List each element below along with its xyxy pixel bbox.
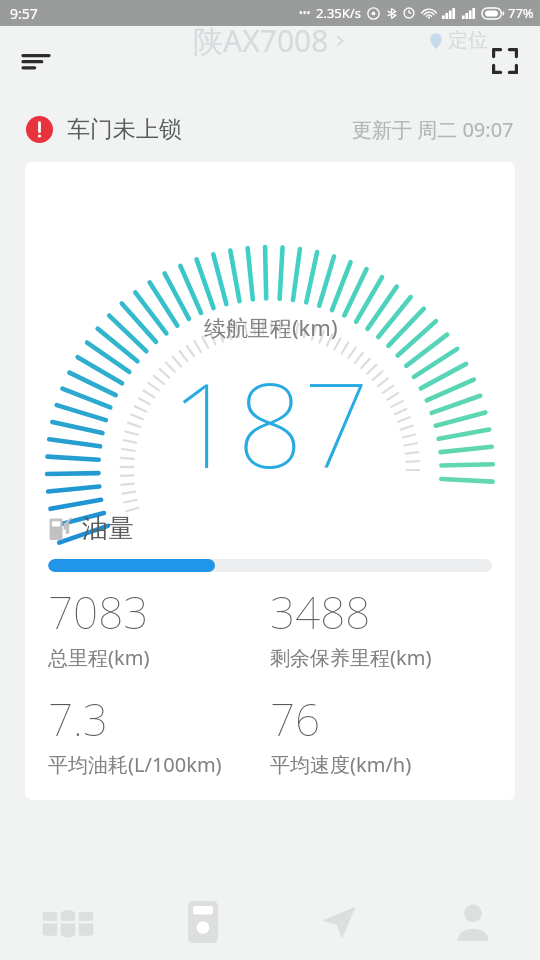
- button[interactable]: Menu: [14, 39, 58, 83]
- staticText: 平均油耗(L/100km): [48, 751, 222, 778]
- staticText: 2.35K/s: [316, 4, 361, 22]
- staticText: 剩余保养里程(km): [270, 644, 432, 671]
- staticText: •••: [299, 6, 311, 20]
- button[interactable]: 3488: [270, 582, 492, 671]
- staticText: 187: [171, 344, 370, 502]
- button[interactable]: Scan: [482, 38, 528, 84]
- button[interactable]: 续航里程(km): [25, 162, 515, 800]
- staticText: 总里程(km): [48, 644, 150, 671]
- staticText: 76: [270, 689, 321, 749]
- staticText: 定位: [448, 28, 488, 53]
- button[interactable]: 车门未上锁: [0, 96, 540, 162]
- staticText: 车门未上锁: [67, 115, 182, 144]
- staticText: 7083: [48, 582, 149, 642]
- staticText: 平均速度(km/h): [270, 751, 412, 778]
- button[interactable]: Navigation: [270, 884, 405, 960]
- button[interactable]: Profile: [405, 884, 540, 960]
- button[interactable]: 7083: [48, 582, 270, 671]
- button[interactable]: Remote: [135, 884, 270, 960]
- staticText: 更新于 周二 09:07: [352, 116, 514, 143]
- staticText: 油量: [82, 512, 134, 545]
- button[interactable]: 7.3: [48, 689, 270, 778]
- button[interactable]: Vehicle: [0, 884, 135, 960]
- button[interactable]: 76: [270, 689, 492, 778]
- staticText: 3488: [270, 582, 371, 642]
- staticText: 9:57: [10, 4, 38, 23]
- staticText: 续航里程(km): [204, 312, 338, 342]
- staticText: 7.3: [48, 689, 108, 749]
- staticText: 77%: [508, 4, 534, 22]
- staticText: 陕AX7008: [193, 20, 329, 61]
